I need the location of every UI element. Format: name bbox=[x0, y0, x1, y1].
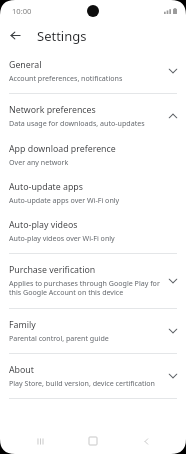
staticText: Auto-play videos over Wi-Fi only bbox=[9, 233, 115, 243]
button[interactable]: Auto-play videos bbox=[0, 213, 186, 253]
staticText: Parental control, parent guide bbox=[9, 333, 109, 343]
staticText: Network preferences bbox=[9, 104, 96, 116]
staticText: Purchase verification bbox=[9, 264, 96, 276]
staticText: Account preferences, notifications bbox=[9, 73, 123, 83]
staticText: About bbox=[9, 364, 34, 376]
button[interactable]: Purchase verification bbox=[0, 254, 186, 308]
button[interactable]: Recent apps bbox=[27, 428, 53, 454]
button[interactable]: Family bbox=[0, 309, 186, 353]
staticText: App download preference bbox=[9, 143, 116, 155]
button[interactable]: Back bbox=[133, 428, 159, 454]
staticText: Auto-update apps bbox=[9, 181, 83, 193]
staticText: Settings bbox=[37, 27, 87, 45]
button[interactable]: Navigate up bbox=[5, 25, 26, 46]
button[interactable]: Network preferences bbox=[0, 94, 186, 137]
staticText: Over any network bbox=[9, 157, 69, 167]
staticText: Auto-update apps over Wi-Fi only bbox=[9, 195, 120, 205]
staticText: Auto-play videos bbox=[9, 219, 78, 231]
staticText: Data usage for downloads, auto-updates bbox=[9, 118, 145, 128]
staticText: 10:00 bbox=[12, 6, 32, 16]
button[interactable]: General bbox=[0, 56, 186, 93]
button[interactable]: App download preference bbox=[0, 137, 186, 175]
button[interactable]: Auto-update apps bbox=[0, 175, 186, 213]
staticText: Applies to purchases through Google Play… bbox=[9, 278, 161, 297]
staticText: Family bbox=[9, 319, 36, 331]
button[interactable]: Home bbox=[80, 428, 106, 454]
button[interactable]: About bbox=[0, 354, 186, 398]
staticText: Play Store, build version, device certif… bbox=[9, 378, 155, 388]
staticText: General bbox=[9, 59, 42, 71]
